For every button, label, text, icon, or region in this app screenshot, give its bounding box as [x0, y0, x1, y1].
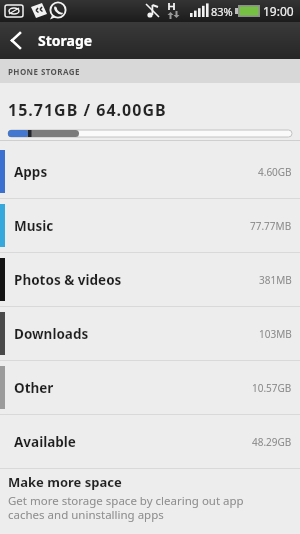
staticText: 83% [211, 4, 233, 19]
button[interactable]: Storage [0, 22, 300, 59]
staticText: Make more space [8, 473, 122, 491]
staticText: 15.71GB / 64.00GB [8, 99, 167, 121]
staticText: 4.60GB [258, 165, 292, 179]
staticText: Music [14, 217, 54, 235]
staticText: 19:00 [263, 3, 294, 19]
staticText: 10.57GB [252, 381, 292, 395]
button[interactable]: Other [0, 361, 300, 414]
staticText: 381MB [259, 273, 292, 287]
staticText: Get more storage space by clearing out a… [8, 493, 244, 522]
staticText: 103MB [259, 327, 292, 341]
staticText: Apps [14, 163, 48, 181]
button[interactable]: Downloads [0, 307, 300, 360]
staticText: PHONE STORAGE [8, 66, 80, 77]
button[interactable]: Photos & videos [0, 253, 300, 306]
staticText: 48.29GB [252, 435, 292, 449]
staticText: Downloads [14, 325, 89, 343]
button[interactable]: Make more space [0, 469, 300, 522]
staticText: Photos & videos [14, 271, 122, 289]
staticText: Storage [38, 31, 93, 50]
button[interactable]: Apps [0, 145, 300, 198]
staticText: 77.77MB [250, 219, 292, 233]
staticText: Other [14, 379, 54, 397]
staticText: Available [14, 433, 76, 451]
button[interactable]: Available [0, 415, 300, 468]
button[interactable]: Music [0, 199, 300, 252]
